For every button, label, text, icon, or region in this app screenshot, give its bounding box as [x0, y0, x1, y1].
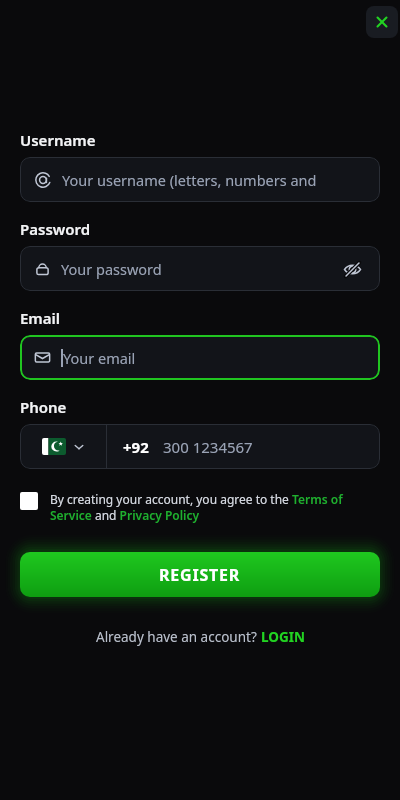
- button[interactable]: REGISTER: [20, 552, 380, 597]
- button[interactable]: Select country code: [20, 424, 106, 469]
- staticText: Password: [20, 219, 91, 239]
- button[interactable]: Your email: [20, 335, 380, 380]
- staticText: Your email: [63, 348, 136, 368]
- button[interactable]: By creating your account, you agree to t…: [20, 491, 380, 524]
- staticText: REGISTER: [159, 564, 241, 586]
- staticText: Already have an account?: [96, 628, 261, 646]
- staticText: 300 1234567: [163, 437, 253, 457]
- staticText: Email: [20, 308, 61, 328]
- button[interactable]: LOGIN: [261, 628, 305, 646]
- staticText: +92: [123, 437, 149, 457]
- staticText: LOGIN: [261, 628, 305, 646]
- button[interactable]: Close: [366, 6, 398, 38]
- staticText: Your username (letters, numbers and: [62, 170, 317, 190]
- staticText: By creating your account, you agree to t…: [50, 491, 380, 524]
- staticText: Phone: [20, 397, 67, 417]
- button[interactable]: Show password: [338, 255, 366, 283]
- button[interactable]: Your username (letters, numbers and: [20, 157, 380, 202]
- button[interactable]: Your password: [20, 246, 380, 291]
- staticText: Username: [20, 130, 96, 150]
- staticText: Your password: [61, 259, 162, 279]
